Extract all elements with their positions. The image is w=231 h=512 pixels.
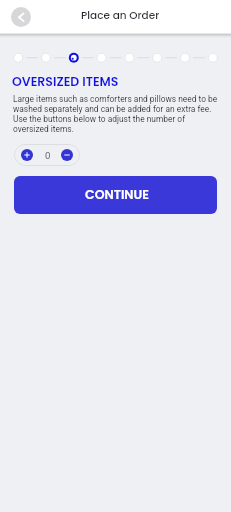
staticText: OVERSIZED ITEMS xyxy=(12,73,119,90)
staticText: 0 xyxy=(45,150,51,161)
button[interactable]: Back xyxy=(11,7,31,27)
button[interactable]: Add oversized item xyxy=(21,149,33,161)
staticText: Large items such as comforters and pillo… xyxy=(13,94,231,134)
staticText: Place an Order xyxy=(81,8,160,23)
button[interactable]: Remove oversized item xyxy=(61,149,73,161)
button[interactable]: CONTINUE xyxy=(14,176,217,214)
staticText: CONTINUE xyxy=(85,186,149,203)
